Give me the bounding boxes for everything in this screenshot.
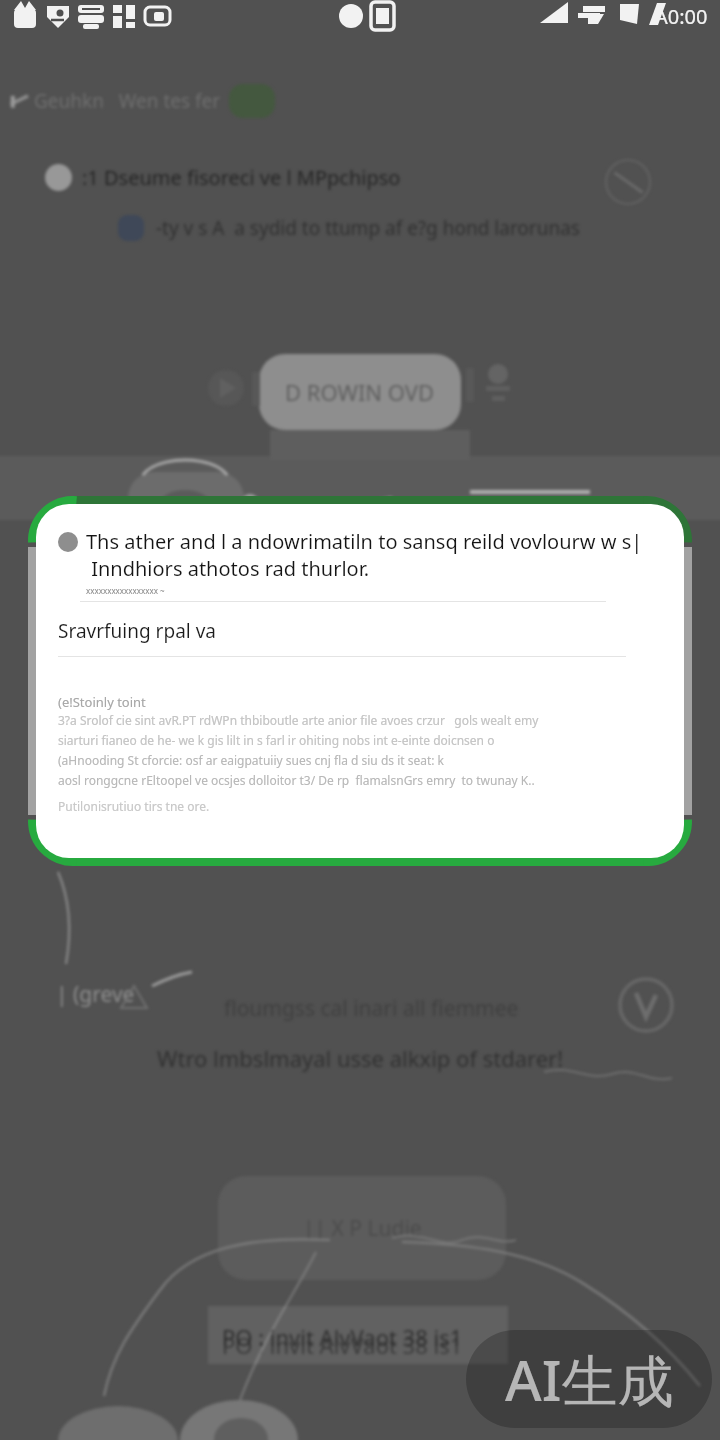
button[interactable]: Back [6,79,720,123]
other: Back [6,88,32,114]
staticText: Geuhkn Wen tes fer [34,88,221,114]
staticText: D ROWIN OVD [285,377,435,407]
button[interactable]: -ty v s A a sydid to ttump af e?g hond l… [118,206,720,250]
staticText: Sravrfuing rpal va [58,618,216,644]
button[interactable]: D ROWIN OVD [259,354,461,430]
button[interactable]: :1 Dseume fisoreci ve l MPpchipso [45,155,720,199]
staticText: :1 Dseume fisoreci ve l MPpchipso [82,164,401,191]
staticText: PO : invit AlvVaot 38 is1 [222,1330,463,1360]
staticText: A0:00 [655,3,708,30]
staticText: xxxxxxxxxxxxxxxxx ~ [86,585,165,596]
button[interactable]: || X P Ludie [218,1176,506,1280]
staticText: 3?a Srolof cie sint avR.PT rdWPn thbibou… [58,712,539,749]
staticText: AI生成 [505,1341,674,1417]
staticText: | (greve [56,980,135,1009]
staticText: Putilonisrutiuo tirs tne ore. [58,798,210,814]
staticText: Ths ather and l a ndowrimatiln to sansq … [86,528,643,582]
staticText: floumgss cal inari all fiemmee [224,994,519,1023]
button[interactable]: Voice input [616,975,676,1035]
staticText: || X P Ludie [303,1214,422,1243]
staticText: -ty v s A a sydid to ttump af e?g hond l… [156,215,580,241]
button[interactable]: Mute [602,156,654,208]
staticText: Wtro lmbslmayal usse alkxip of stdarer! [157,1043,564,1073]
staticText: (aHnooding St cforcie: osf ar eaigpatuii… [58,752,535,789]
staticText: (e!Stoinly toint [58,693,146,711]
staticText: PO : invit AlvVaot 38 is1 [222,1322,463,1352]
